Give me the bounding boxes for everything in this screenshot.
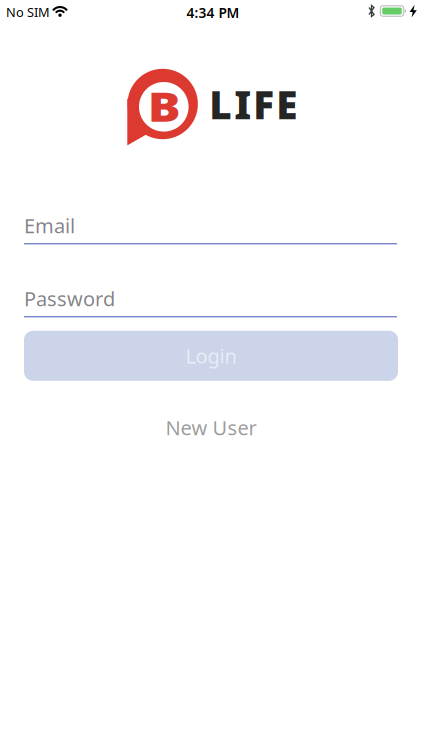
staticText: Password bbox=[24, 285, 115, 312]
staticText: Email bbox=[24, 212, 75, 239]
staticText: No SIM bbox=[6, 3, 50, 20]
staticText: E bbox=[276, 78, 297, 130]
staticText: 4:34 PM bbox=[186, 3, 239, 22]
button[interactable]: Login bbox=[24, 331, 398, 381]
button[interactable]: New User bbox=[165, 414, 256, 441]
staticText: I bbox=[234, 78, 251, 130]
staticText: B bbox=[151, 80, 178, 133]
staticText: F bbox=[253, 78, 274, 130]
staticText: New User bbox=[165, 414, 256, 441]
staticText: Login bbox=[185, 342, 236, 369]
staticText: L bbox=[209, 78, 232, 130]
